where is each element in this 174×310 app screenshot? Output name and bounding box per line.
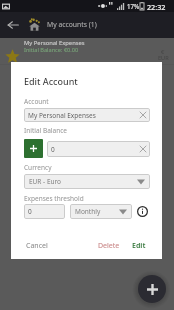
- button[interactable]: 0: [24, 204, 65, 219]
- button[interactable]: My Personal Expenses: [0, 38, 174, 64]
- button[interactable]: Monthly: [70, 204, 132, 219]
- button[interactable]: EUR - Euro: [24, 174, 150, 189]
- staticText: EUR: [158, 54, 169, 62]
- button[interactable]: Delete: [98, 241, 120, 251]
- staticText: Edit Account: [24, 75, 78, 87]
- staticText: My Personal Expenses: [28, 111, 96, 120]
- button[interactable]: Edit: [132, 241, 146, 251]
- staticText: Cancel: [26, 241, 48, 251]
- staticText: Monthly: [75, 207, 101, 216]
- staticText: 0: [28, 207, 32, 216]
- staticText: 0: [51, 145, 55, 154]
- button[interactable]: Toggle sign: [24, 139, 43, 158]
- staticText: 17%: [127, 2, 140, 10]
- staticText: My Personal Expenses: [24, 39, 85, 47]
- button[interactable]: My Personal Expenses: [24, 108, 150, 122]
- staticText: EUR - Euro: [29, 177, 61, 186]
- button[interactable]: Back: [4, 16, 22, 34]
- staticText: Edit: [132, 241, 146, 251]
- staticText: Initial Balance: €0.00: [24, 46, 79, 54]
- staticText: €: [161, 48, 165, 56]
- button[interactable]: 0: [47, 141, 150, 157]
- staticText: Account: [24, 97, 49, 106]
- staticText: Expenses threshold: [24, 194, 84, 203]
- staticText: Delete: [98, 241, 120, 251]
- staticText: My accounts (1): [47, 20, 97, 29]
- staticText: Currency: [24, 163, 52, 172]
- button[interactable]: Add account: [138, 275, 166, 303]
- staticText: Initial Balance: [24, 126, 67, 135]
- staticText: 22:32: [147, 2, 166, 12]
- button[interactable]: Cancel: [26, 241, 48, 251]
- button[interactable]: Info: [137, 206, 148, 217]
